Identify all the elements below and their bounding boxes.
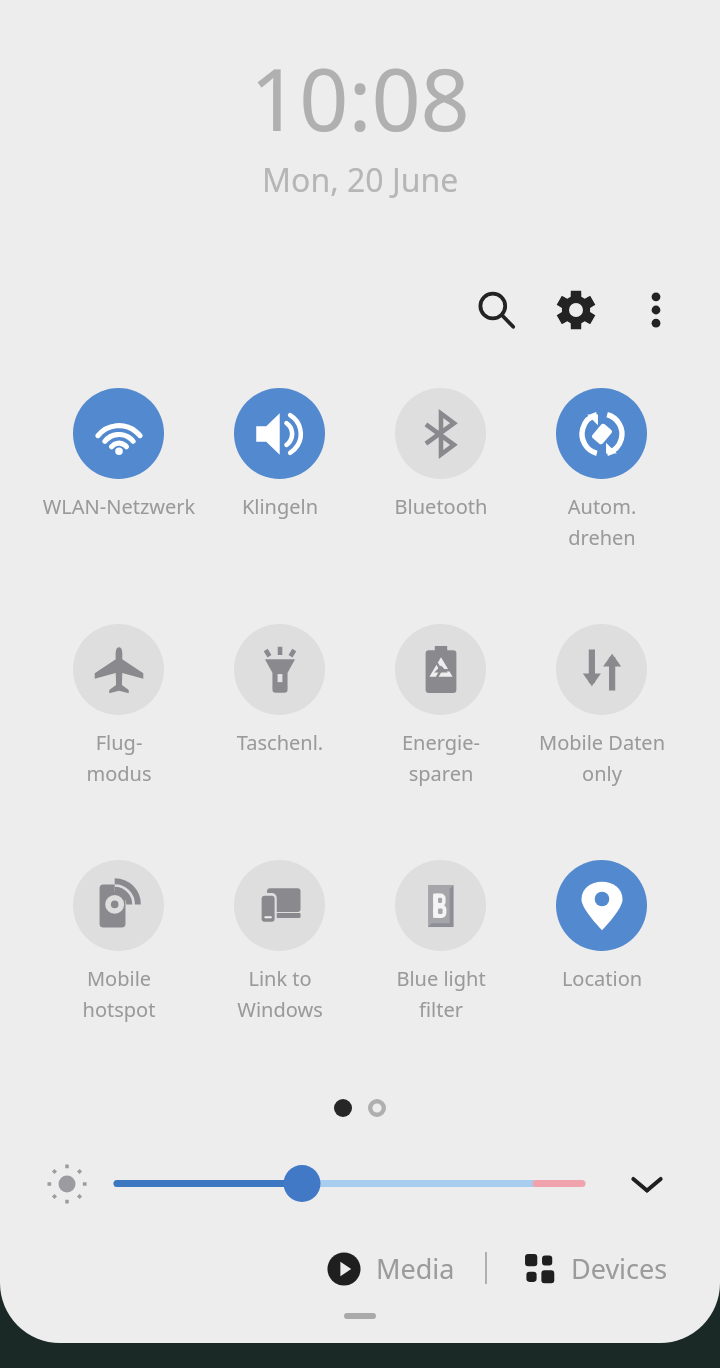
button[interactable]: Media xyxy=(318,1244,463,1293)
button[interactable]: Taschenl. xyxy=(199,624,360,756)
staticText: Location xyxy=(523,965,681,992)
button[interactable]: Mobile hotspot xyxy=(38,860,199,1023)
staticText: Link to Windows xyxy=(201,965,359,1023)
staticText: WLAN-Netzwerk xyxy=(40,493,198,520)
button[interactable]: Brightness xyxy=(44,1161,90,1207)
staticText: Mobile hotspot xyxy=(40,965,198,1023)
staticText: 10:08 xyxy=(250,39,470,156)
staticText: Flug- modus xyxy=(40,729,198,787)
button[interactable]: Flug- modus xyxy=(38,624,199,787)
button[interactable]: Home xyxy=(0,1311,720,1321)
button[interactable] xyxy=(100,1160,600,1208)
button[interactable]: Devices xyxy=(515,1244,676,1293)
button[interactable]: Link to Windows xyxy=(199,860,360,1023)
staticText: Klingeln xyxy=(201,493,359,520)
button[interactable]: Klingeln xyxy=(199,388,360,520)
button[interactable]: Autom. drehen xyxy=(521,388,682,551)
staticText: Mon, 20 June xyxy=(262,158,459,202)
staticText: Mobile Daten only xyxy=(523,729,681,787)
button[interactable]: Location xyxy=(521,860,682,992)
staticText: Bluetooth xyxy=(362,493,520,520)
staticText: Taschenl. xyxy=(201,729,359,756)
staticText: Media xyxy=(376,1250,455,1287)
button[interactable]: WLAN-Netzwerk xyxy=(38,388,199,520)
button[interactable]: Settings xyxy=(536,270,616,350)
button[interactable]: More options xyxy=(616,270,696,350)
button[interactable]: Bluetooth xyxy=(360,388,521,520)
button[interactable]: Blue light filter xyxy=(360,860,521,1023)
button[interactable]: Energie- sparen xyxy=(360,624,521,787)
staticText: Autom. drehen xyxy=(523,493,681,551)
staticText: Devices xyxy=(571,1250,668,1287)
button[interactable]: Mobile Daten only xyxy=(521,624,682,787)
button[interactable]: Search xyxy=(456,270,536,350)
staticText: Blue light filter xyxy=(362,965,520,1023)
staticText: Energie- sparen xyxy=(362,729,520,787)
button[interactable]: Expand xyxy=(615,1152,679,1216)
